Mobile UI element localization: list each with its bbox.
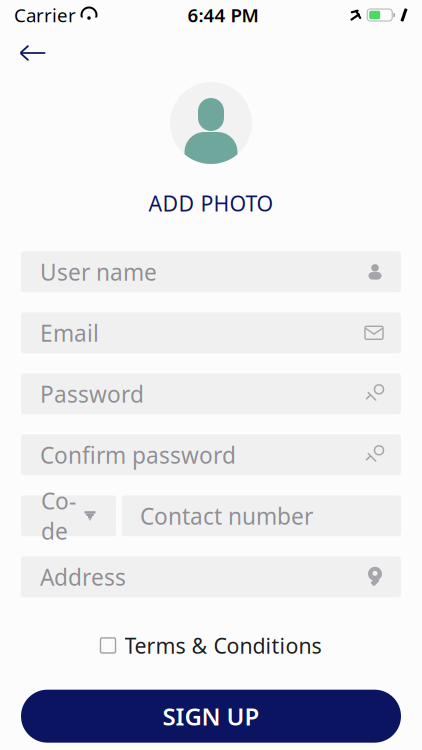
button[interactable]: Address: [21, 556, 401, 597]
button[interactable]: Back: [12, 34, 54, 72]
button[interactable]: User name: [21, 251, 401, 292]
staticText: ADD PHOTO: [148, 189, 273, 217]
staticText: User name: [40, 257, 157, 287]
button[interactable]: Contact number: [122, 495, 401, 536]
button[interactable]: Email: [21, 312, 401, 353]
staticText: Password: [40, 379, 144, 409]
button[interactable]: Terms & Conditions: [90, 623, 331, 668]
staticText: SIGN UP: [162, 700, 259, 732]
staticText: Code: [41, 486, 76, 546]
staticText: Address: [40, 562, 126, 592]
button[interactable]: Code: [21, 495, 116, 536]
button[interactable]: Confirm password: [21, 434, 401, 475]
button[interactable]: Password: [21, 373, 401, 414]
staticText: Email: [40, 318, 99, 348]
button[interactable]: SIGN UP: [21, 690, 401, 743]
staticText: Carrier: [14, 3, 76, 27]
staticText: Confirm password: [40, 440, 236, 470]
staticText: Contact number: [140, 501, 313, 531]
staticText: Terms & Conditions: [124, 631, 321, 660]
button[interactable]: ADD PHOTO: [148, 82, 273, 217]
staticText: 6:44 PM: [188, 3, 259, 27]
